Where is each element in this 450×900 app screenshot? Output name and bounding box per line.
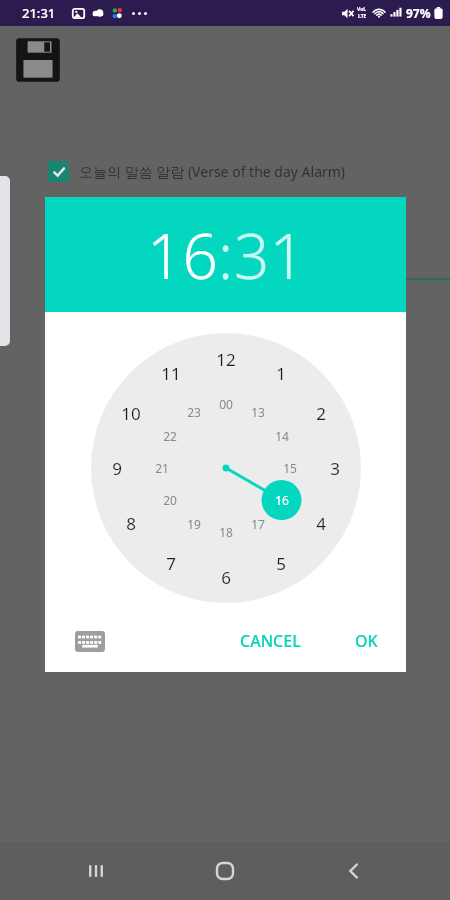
staticText: 20 [163, 492, 177, 508]
staticText: OK [355, 630, 378, 652]
staticText: : [218, 213, 234, 297]
staticText: 13 [251, 404, 265, 420]
staticText: 97% [406, 5, 431, 21]
button[interactable]: Switch to text input mode [75, 631, 105, 652]
button[interactable]: Recent apps [78, 853, 114, 889]
staticText: LTE [358, 13, 367, 20]
staticText: 18 [219, 524, 233, 540]
staticText: 16 [147, 213, 218, 297]
button[interactable]: Save [12, 34, 64, 86]
button[interactable]: Back [336, 853, 372, 889]
staticText: 오늘의 말씀 알람 (Verse of the day Alarm) [79, 162, 346, 181]
staticText: 21:31 [22, 4, 56, 22]
button[interactable]: OK [341, 620, 392, 662]
staticText: 1 [276, 362, 286, 385]
staticText: 16 [275, 492, 289, 508]
staticText: 15 [283, 460, 297, 476]
staticText: 9 [112, 457, 122, 480]
staticText: VoL [357, 6, 367, 13]
staticText: 19 [187, 516, 201, 532]
staticText: 22 [163, 428, 177, 444]
button[interactable]: 16 [45, 197, 406, 312]
staticText: 23 [187, 404, 201, 420]
staticText: 14 [275, 428, 289, 444]
staticText: 17 [251, 516, 265, 532]
staticText: 5 [276, 552, 286, 575]
button[interactable]: Home [205, 851, 245, 891]
staticText: 11 [161, 362, 181, 385]
staticText: 4 [316, 512, 326, 535]
staticText: 00 [219, 396, 233, 412]
button[interactable]: CANCEL [226, 620, 315, 662]
staticText: 3 [330, 457, 340, 480]
staticText: 10 [121, 402, 141, 425]
staticText: 2 [316, 402, 326, 425]
staticText: 8 [126, 512, 136, 535]
staticText: 6 [221, 566, 231, 589]
staticText: 31 [234, 213, 305, 297]
staticText: 21 [155, 460, 169, 476]
staticText: 12 [216, 348, 236, 371]
staticText: CANCEL [240, 630, 301, 652]
staticText: 7 [166, 552, 176, 575]
button[interactable]: 오늘의 말씀 알람 (Verse of the day Alarm) [48, 161, 346, 182]
